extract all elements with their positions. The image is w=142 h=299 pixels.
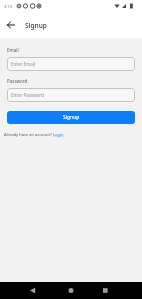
staticText: Login	[53, 132, 64, 137]
button[interactable]: Already have an account?	[4, 132, 64, 137]
button[interactable]: Signup	[7, 111, 135, 124]
staticText: Enter Password	[11, 92, 44, 98]
staticText: Email	[7, 47, 19, 53]
button[interactable]	[0, 282, 48, 299]
staticText: Password	[7, 78, 28, 84]
staticText: Already have an account?	[4, 132, 53, 137]
button[interactable]: Enter Password	[7, 88, 135, 102]
button[interactable]	[95, 282, 142, 299]
staticText: Enter Email	[11, 61, 36, 67]
button[interactable]	[0, 14, 22, 36]
staticText: 3:13	[4, 4, 12, 9]
staticText: Signup	[63, 114, 80, 121]
staticText: Signup	[25, 21, 47, 30]
button[interactable]	[48, 282, 95, 299]
button[interactable]: Enter Email	[7, 57, 135, 71]
